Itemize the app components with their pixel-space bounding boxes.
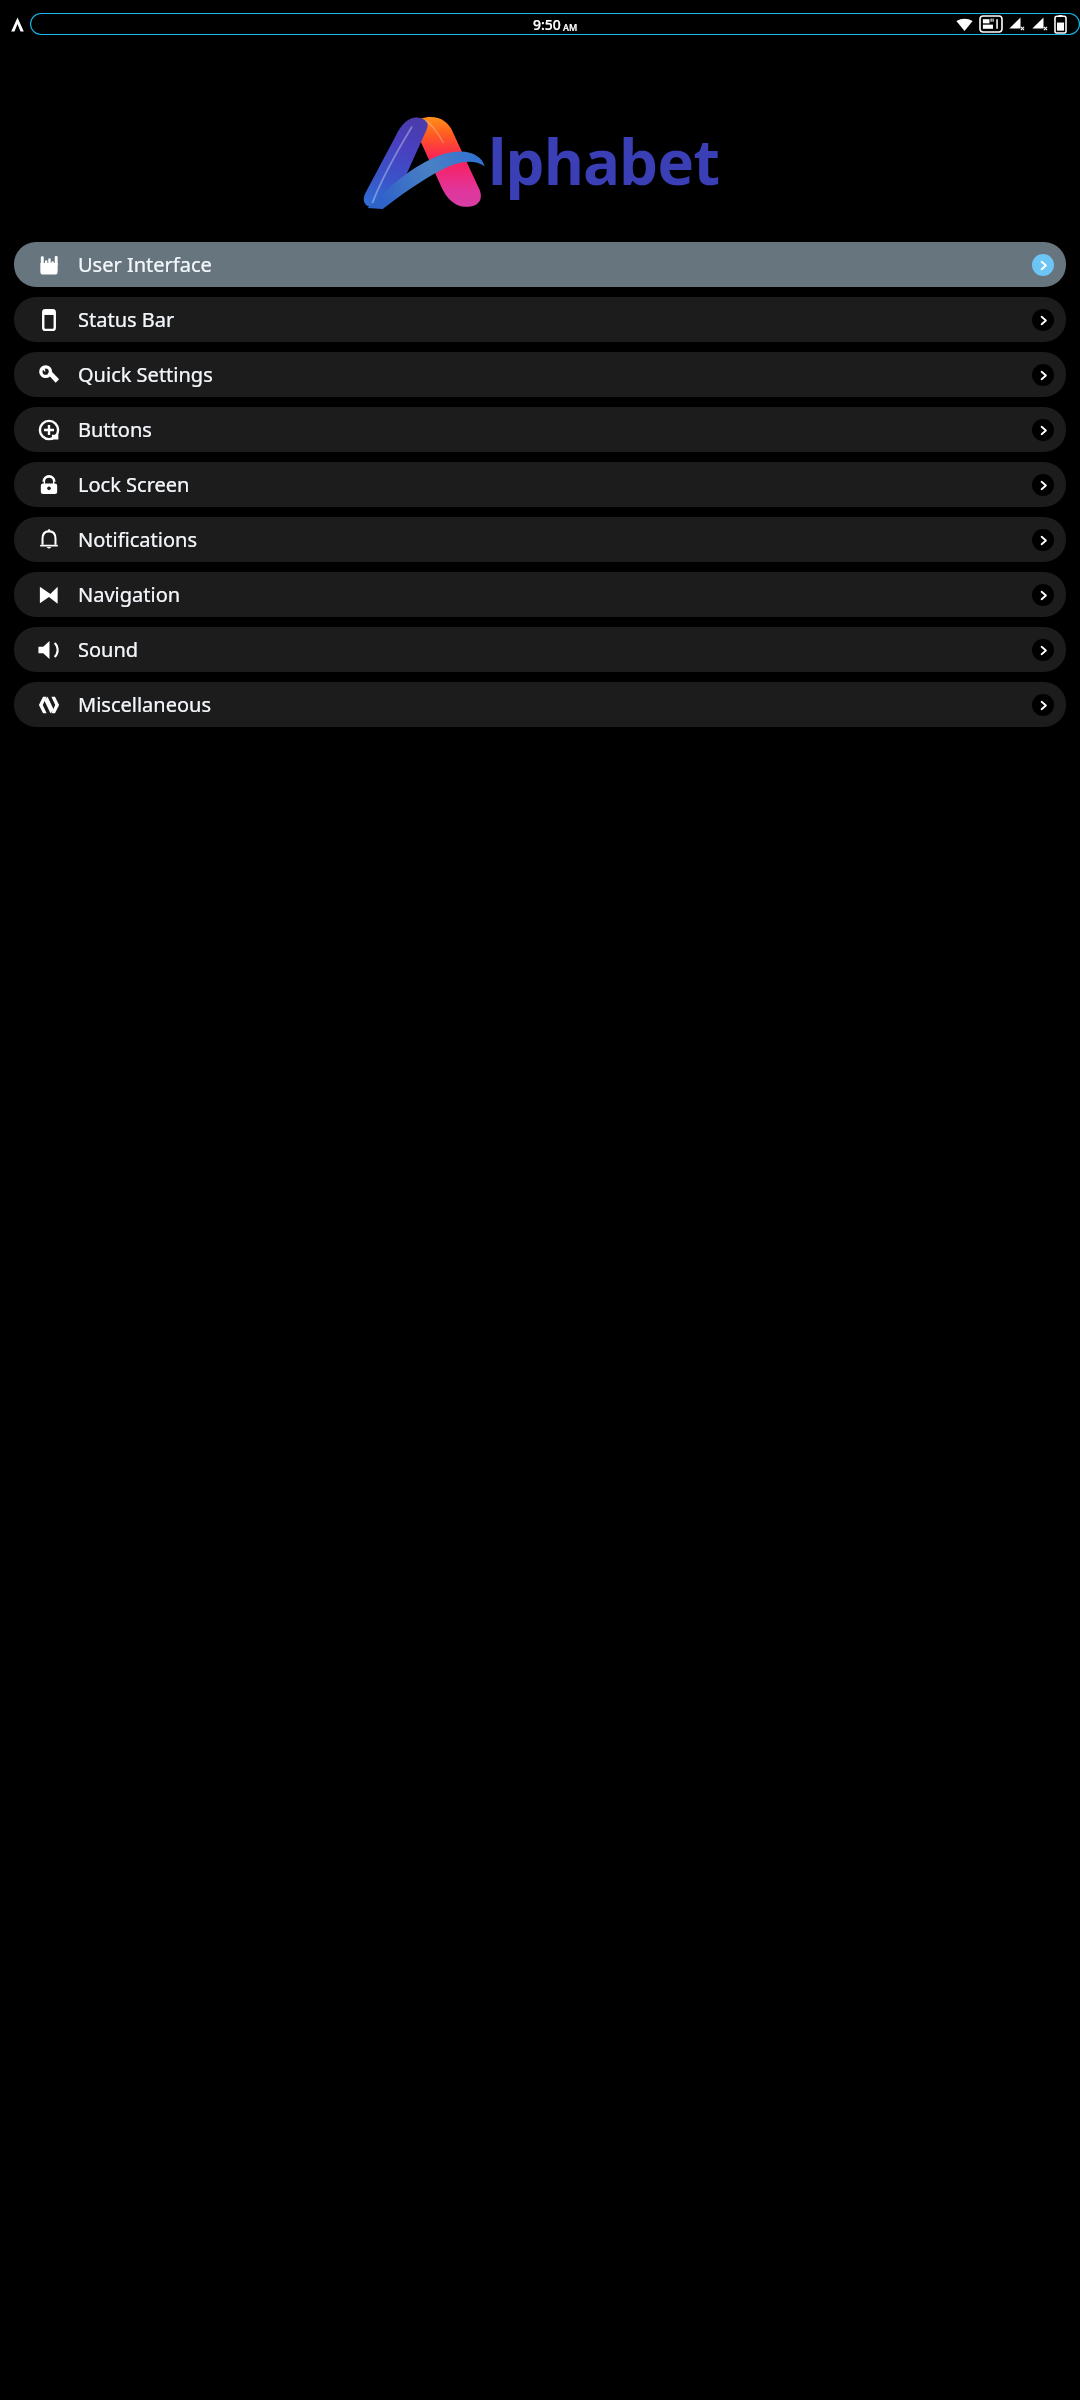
button[interactable]: Open Quick Settings <box>1032 364 1054 386</box>
button[interactable]: Open Sound <box>1032 639 1054 661</box>
button[interactable]: Navigation <box>14 572 1066 617</box>
staticText: Navigation <box>78 581 1032 608</box>
button[interactable]: Lock Screen <box>14 462 1066 507</box>
staticText: 9:50 <box>533 15 561 34</box>
staticText: Sound <box>78 636 1032 663</box>
staticText: Notifications <box>78 526 1032 553</box>
button[interactable]: Open Navigation <box>1032 584 1054 606</box>
button[interactable]: Notifications <box>14 517 1066 562</box>
button[interactable]: Open Status Bar <box>1032 309 1054 331</box>
button[interactable]: Miscellaneous <box>14 682 1066 727</box>
button[interactable]: Status Bar <box>14 297 1066 342</box>
staticText: User Interface <box>78 251 1032 278</box>
staticText: AM <box>563 21 578 33</box>
button[interactable]: Open Lock Screen <box>1032 474 1054 496</box>
staticText: Quick Settings <box>78 361 1032 388</box>
staticText: Lock Screen <box>78 471 1032 498</box>
button[interactable]: Quick Settings <box>14 352 1066 397</box>
staticText: lphabet <box>488 119 720 203</box>
button[interactable]: Buttons <box>14 407 1066 452</box>
staticText: Buttons <box>78 416 1032 443</box>
staticText: Miscellaneous <box>78 691 1032 718</box>
button[interactable]: Sound <box>14 627 1066 672</box>
button[interactable]: Open Buttons <box>1032 419 1054 441</box>
button[interactable]: Open User Interface <box>1032 254 1054 276</box>
button[interactable]: Open Miscellaneous <box>1032 694 1054 716</box>
button[interactable]: User Interface <box>14 242 1066 287</box>
staticText: Status Bar <box>78 306 1032 333</box>
button[interactable]: Open Notifications <box>1032 529 1054 551</box>
